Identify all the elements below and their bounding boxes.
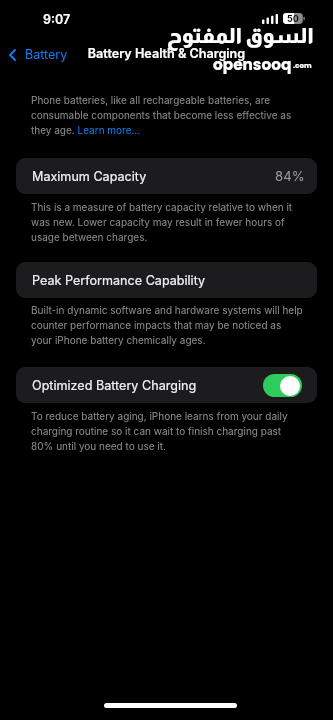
staticText: Battery Health & Charging xyxy=(0,46,333,61)
staticText: Peak Performance Capability xyxy=(32,273,206,288)
staticText: opensooq xyxy=(213,54,292,75)
staticText: 84% xyxy=(275,168,305,184)
staticText: Battery xyxy=(25,47,68,62)
staticText: To reduce battery aging, iPhone learns f… xyxy=(31,410,304,453)
button[interactable]: Battery xyxy=(6,44,71,65)
staticText: 50 xyxy=(287,13,299,24)
button[interactable]: Maximum Capacity xyxy=(16,158,317,194)
button[interactable]: Optimized Battery Charging toggle xyxy=(263,374,302,397)
staticText: .com xyxy=(293,60,312,70)
staticText: Built-in dynamic software and hardware s… xyxy=(31,304,304,347)
staticText: السوق المفتوح xyxy=(167,24,314,47)
button[interactable]: Peak Performance Capability xyxy=(16,262,317,298)
staticText: Optimized Battery Charging xyxy=(32,378,197,393)
staticText: 9:07 xyxy=(43,12,71,27)
staticText: Maximum Capacity xyxy=(32,169,147,184)
button[interactable]: Optimized Battery Charging xyxy=(16,367,317,403)
staticText: Phone batteries, like all rechargeable b… xyxy=(31,94,304,137)
staticText: This is a measure of battery capacity re… xyxy=(31,201,304,244)
